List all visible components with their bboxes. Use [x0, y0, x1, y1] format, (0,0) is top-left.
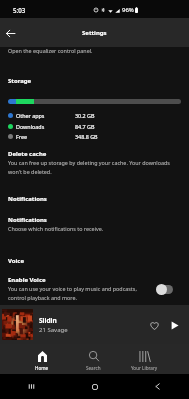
- button[interactable]: Home: [16, 344, 68, 374]
- staticText: Storage: [8, 77, 32, 85]
- staticText: Delete cache: [8, 150, 47, 158]
- button[interactable]: Notifications: [0, 212, 189, 236]
- staticText: Your Library: [131, 365, 158, 371]
- button[interactable]: Like: [146, 317, 162, 333]
- button[interactable]: Home: [63, 374, 126, 399]
- staticText: Slidin: [39, 316, 57, 325]
- staticText: You can use your voice to play music and…: [8, 285, 141, 301]
- button[interactable]: Back: [126, 374, 189, 399]
- staticText: Settings: [82, 29, 107, 37]
- button[interactable]: Enable Voice: [0, 272, 189, 305]
- staticText: Home: [35, 365, 49, 371]
- button[interactable]: Search: [68, 344, 119, 374]
- button[interactable]: Delete cache: [0, 146, 189, 179]
- staticText: 348.8 GB: [75, 133, 98, 140]
- button[interactable]: Enable Voice toggle: [151, 280, 177, 298]
- button[interactable]: Your Library: [119, 344, 170, 374]
- staticText: 96%: [122, 6, 134, 14]
- button[interactable]: Play: [166, 317, 182, 333]
- staticText: Voice: [8, 257, 25, 265]
- staticText: 5:03: [13, 6, 26, 14]
- staticText: Free: [16, 133, 27, 140]
- staticText: Other apps: [16, 112, 45, 119]
- staticText: You can free up storage by deleting your…: [8, 159, 177, 175]
- staticText: 30.2 GB: [75, 112, 95, 119]
- staticText: Open the equalizer control panel.: [8, 47, 93, 54]
- button[interactable]: Back: [2, 25, 18, 41]
- staticText: Search: [86, 365, 101, 371]
- staticText: Notifications: [8, 216, 47, 224]
- staticText: Enable Voice: [8, 276, 46, 284]
- button[interactable]: Recents: [0, 374, 63, 399]
- staticText: Choose which notifications to receive.: [8, 225, 104, 232]
- staticText: Downloads: [16, 123, 45, 130]
- staticText: 21 Savage: [39, 326, 68, 334]
- staticText: Notifications: [8, 195, 47, 203]
- staticText: 84.7 GB: [75, 123, 95, 130]
